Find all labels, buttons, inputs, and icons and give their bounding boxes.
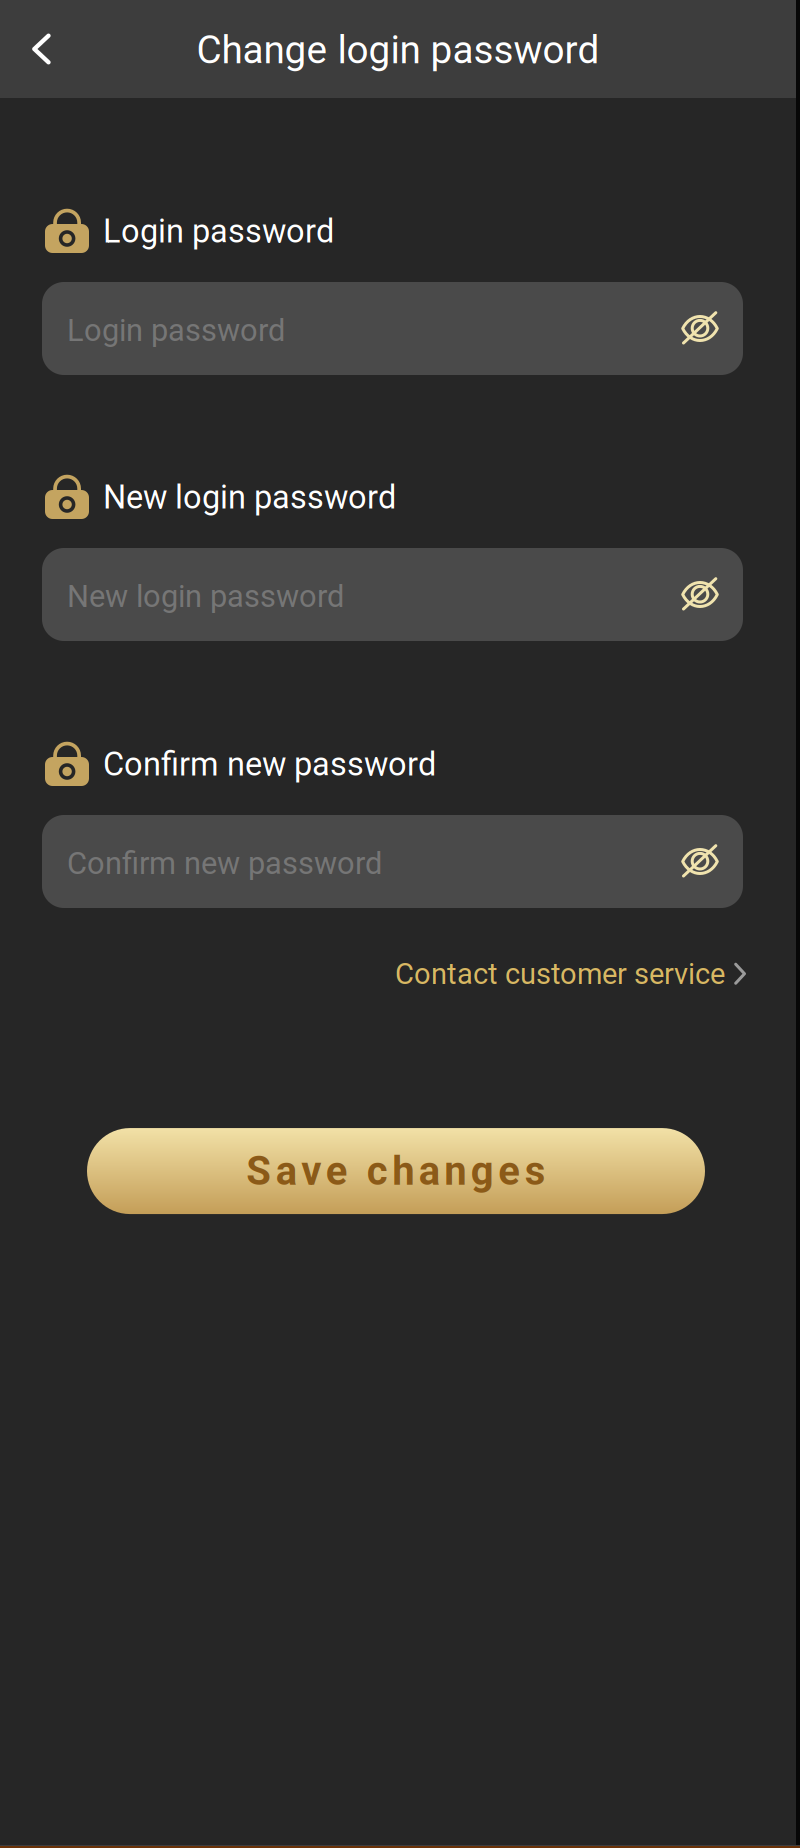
button[interactable]: Back <box>0 0 82 98</box>
button[interactable]: Show Confirm new password <box>681 844 719 878</box>
staticText: Change login password <box>196 27 599 73</box>
button[interactable]: Contact customer service <box>395 957 747 991</box>
button[interactable]: Confirm new password <box>42 815 743 908</box>
staticText: Contact customer service <box>395 957 725 991</box>
button[interactable]: Show New login password <box>681 577 719 611</box>
button[interactable]: Login password <box>42 282 743 375</box>
button[interactable]: Show Login password <box>681 311 719 345</box>
staticText: Confirm new password <box>103 745 436 783</box>
button[interactable]: Save changes <box>87 1128 705 1214</box>
staticText: Login password <box>103 212 334 250</box>
staticText: Save changes <box>246 1148 546 1194</box>
staticText: Confirm new password <box>67 845 382 882</box>
staticText: New login password <box>67 578 344 615</box>
staticText: Login password <box>67 312 285 349</box>
staticText: New login password <box>103 478 396 516</box>
button[interactable]: New login password <box>42 548 743 641</box>
